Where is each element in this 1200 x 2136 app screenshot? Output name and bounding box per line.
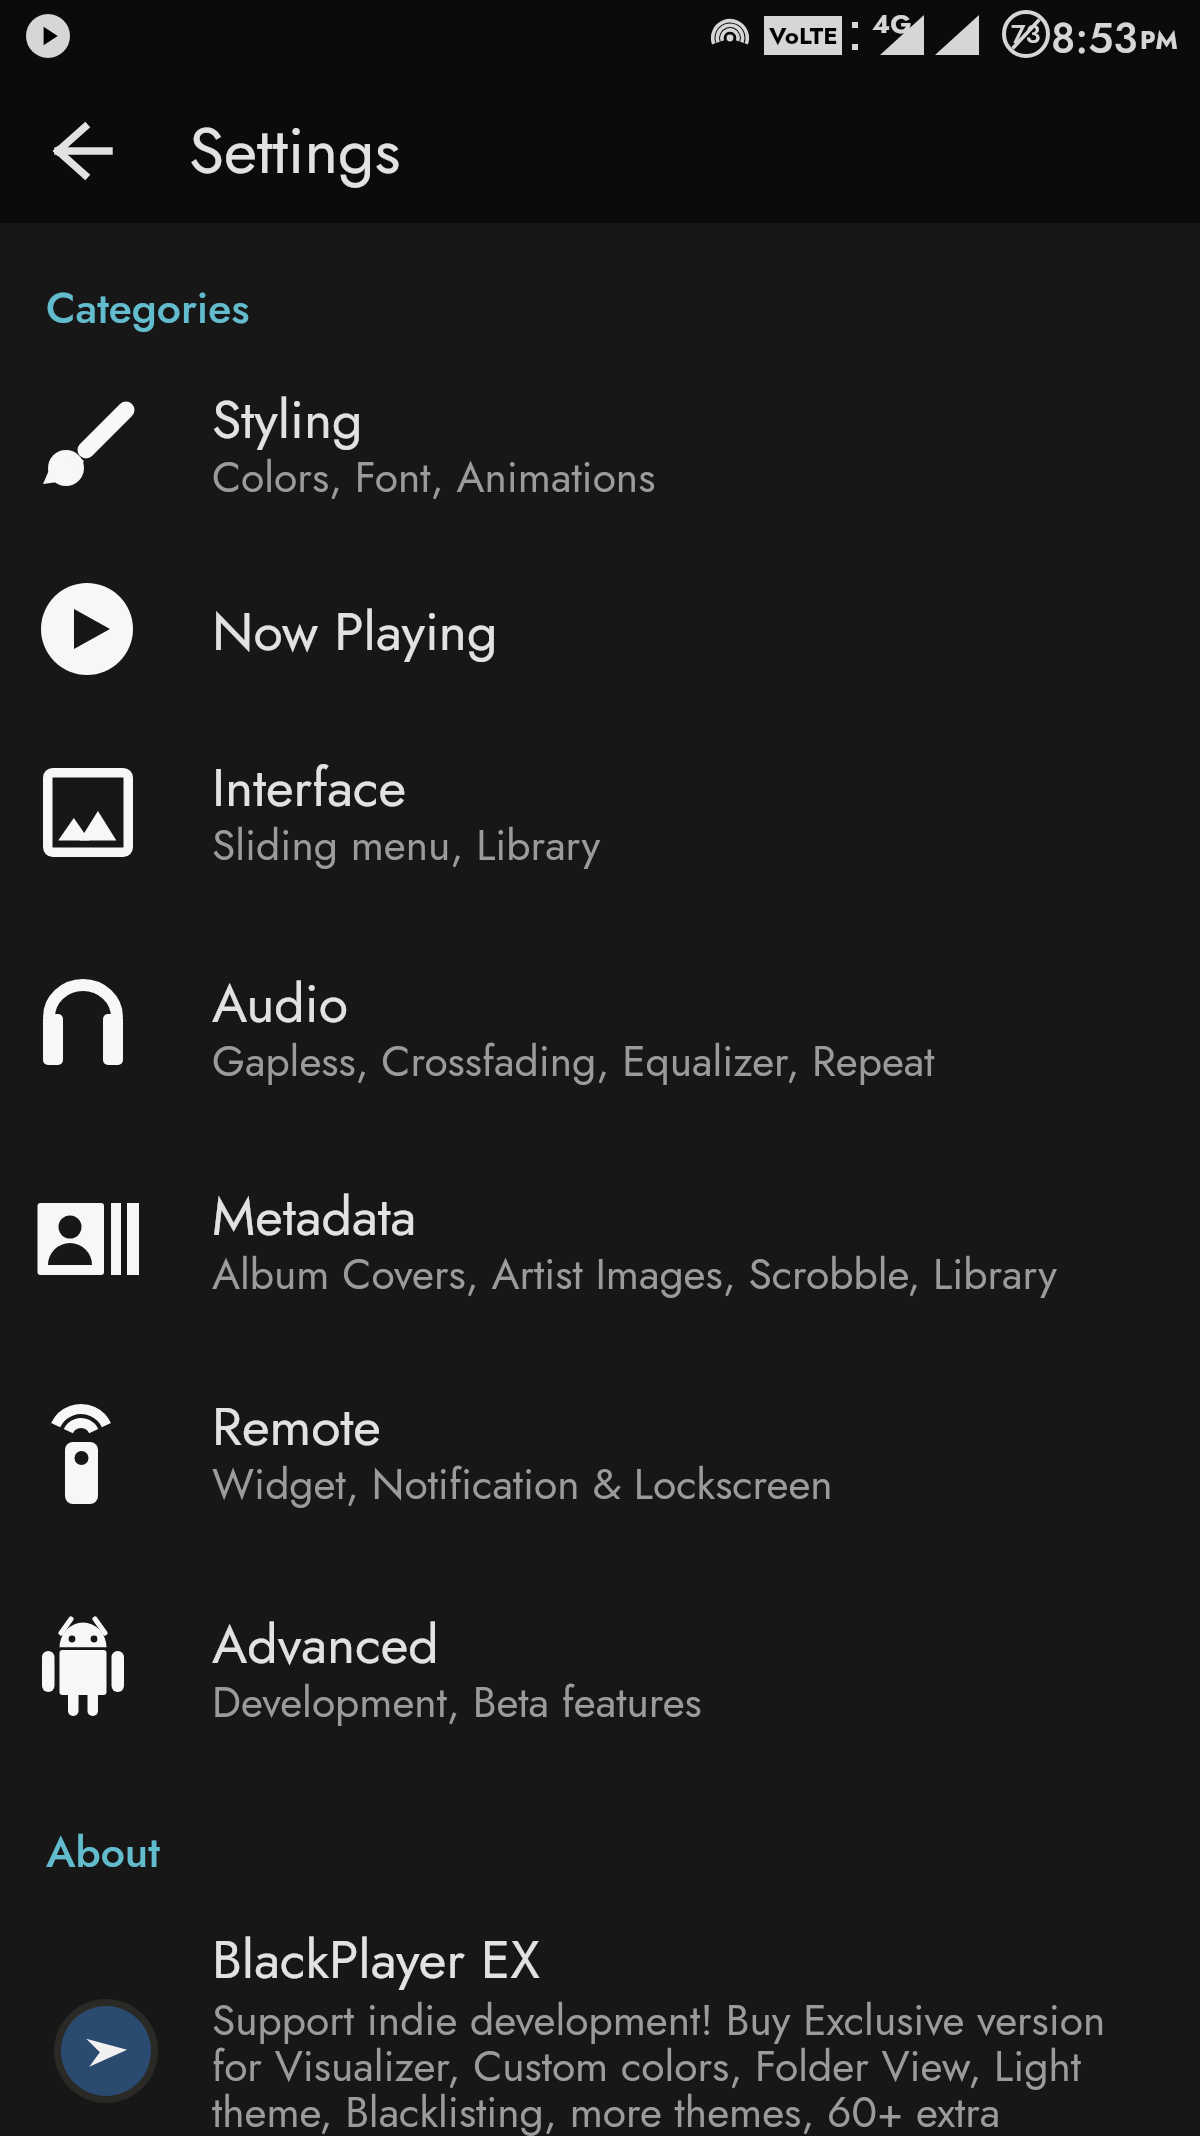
button[interactable]: Metadata (0, 1148, 1200, 1361)
staticText: Categories (46, 277, 250, 339)
staticText: 8:53 (1051, 8, 1138, 69)
staticText: Styling (212, 381, 363, 458)
staticText: Audio (212, 965, 348, 1042)
button[interactable]: Back (27, 103, 137, 199)
staticText: Sliding menu, Library (212, 815, 1200, 876)
button[interactable]: Remote (0, 1358, 1200, 1571)
staticText: BlackPlayer EX (212, 1921, 540, 1998)
staticText: Remote (212, 1388, 381, 1465)
staticText: Colors, Font, Animations (212, 447, 1200, 508)
staticText: Development, Beta features (212, 1672, 1200, 1733)
staticText: Interface (212, 749, 407, 826)
button[interactable]: Now Playing (0, 543, 1200, 702)
button[interactable]: Audio (0, 935, 1200, 1148)
staticText: Gapless, Crossfading, Equalizer, Repeat (212, 1031, 1200, 1092)
staticText: Album Covers, Artist Images, Scrobble, L… (212, 1244, 1200, 1305)
staticText: Support indie development! Buy Exclusive… (212, 1990, 1122, 2136)
button[interactable]: Advanced (0, 1576, 1200, 1789)
staticText: 4G (872, 5, 912, 43)
staticText: 73 (1011, 15, 1041, 53)
staticText: Settings (189, 105, 401, 197)
staticText: Now Playing (212, 593, 498, 670)
staticText: About (46, 1821, 160, 1883)
staticText: PM (1140, 22, 1178, 58)
button[interactable]: Interface (0, 719, 1200, 932)
button[interactable]: BlackPlayer EX (0, 1893, 1200, 2136)
staticText: Widget, Notification & Lockscreen (212, 1454, 1200, 1515)
staticText: Metadata (212, 1178, 417, 1255)
staticText: VoLTE (769, 18, 838, 53)
staticText: Advanced (212, 1606, 439, 1683)
button[interactable]: Styling (0, 351, 1200, 564)
